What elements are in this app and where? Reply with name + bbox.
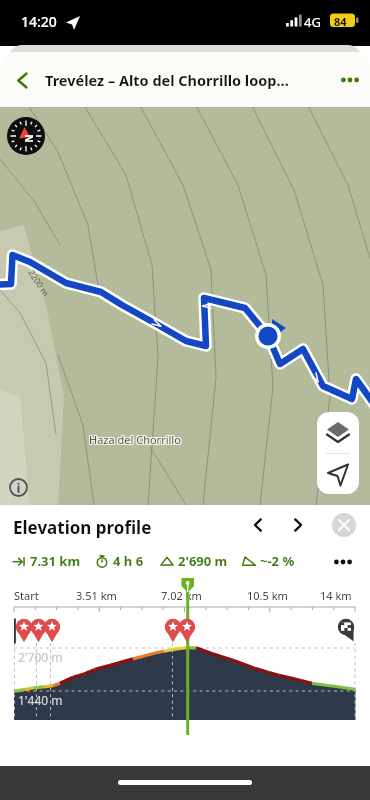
staticText: Haza del Chorrillo <box>89 432 181 447</box>
staticText: 3.51 km <box>76 588 117 603</box>
staticText: N <box>21 133 35 142</box>
staticText: Trevélez – Alto del Chorrillo loop... <box>45 70 330 90</box>
staticText: 14:20 <box>21 12 57 31</box>
staticText: Haza del Chorrillo <box>88 433 180 448</box>
staticText: 4G <box>304 13 321 31</box>
staticText: Haza del Chorrillo <box>89 431 181 446</box>
staticText: Elevation profile <box>13 516 152 539</box>
staticText: Haza del Chorrillo <box>88 432 180 447</box>
button[interactable]: Back <box>0 55 45 105</box>
staticText: ~-2 % <box>260 552 295 570</box>
staticText: 10.5 km <box>247 588 288 603</box>
staticText: 7.02 km <box>161 588 202 603</box>
button[interactable]: Previous <box>243 510 273 540</box>
staticText: Haza del Chorrillo <box>90 433 182 448</box>
button[interactable]: Next <box>283 510 313 540</box>
staticText: 7.31 km <box>30 552 81 570</box>
staticText: Haza del Chorrillo <box>88 431 180 446</box>
button[interactable]: More details <box>330 549 356 575</box>
staticText: Haza del Chorrillo <box>90 431 182 446</box>
staticText: Start <box>14 588 39 603</box>
staticText: 4 h 6 <box>113 552 144 570</box>
staticText: 2'690 m <box>178 552 228 570</box>
staticText: Haza del Chorrillo <box>89 433 181 448</box>
staticText: 84 <box>334 14 347 29</box>
staticText: 1'440 m <box>18 692 63 708</box>
button[interactable]: Compass <box>7 117 45 155</box>
button[interactable]: Map layers <box>317 412 359 453</box>
staticText: 2'700 m <box>18 649 63 665</box>
button[interactable]: Close <box>332 513 356 537</box>
staticText: Haza del Chorrillo <box>90 432 182 447</box>
staticText: 14 km <box>320 588 352 603</box>
staticText: 2200 m <box>25 267 52 299</box>
button[interactable]: Info <box>9 478 28 497</box>
button[interactable]: My location <box>317 453 359 494</box>
button[interactable]: More options <box>330 55 370 105</box>
